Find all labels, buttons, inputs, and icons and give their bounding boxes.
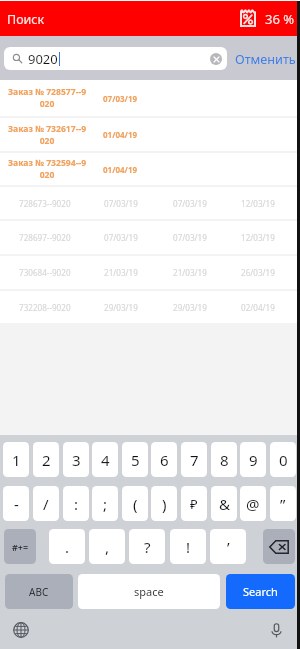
button[interactable]: - (3, 486, 29, 521)
staticText: - (14, 494, 19, 514)
button[interactable]: Заказ № 732594--9 020 (0, 153, 300, 185)
button[interactable]: ) (151, 486, 177, 521)
staticText: 7 (190, 450, 199, 470)
staticText: 728697--9020 (19, 232, 71, 243)
button[interactable]: ? (129, 529, 165, 564)
staticText: / (43, 494, 49, 514)
staticText: 9 (249, 450, 258, 470)
staticText: 26/03/19 (241, 267, 275, 278)
button[interactable]: . (49, 529, 85, 564)
staticText: 9020 (28, 50, 58, 68)
button[interactable]: 728697--9020 (0, 221, 300, 254)
staticText: @ (246, 494, 260, 514)
button[interactable]: @ (240, 486, 266, 521)
staticText: 07/03/19 (173, 198, 207, 209)
button[interactable]: ! (170, 529, 206, 564)
staticText: 02/04/19 (241, 302, 275, 313)
staticText: 1 (12, 450, 21, 470)
staticText: 4 (101, 450, 110, 470)
button[interactable]: / (33, 486, 59, 521)
staticText: 12/03/19 (241, 232, 275, 243)
button[interactable]: 728673--9020 (0, 187, 300, 219)
staticText: 01/04/19 (103, 164, 138, 175)
button[interactable]: : (63, 486, 89, 521)
staticText: 01/04/19 (103, 129, 138, 140)
staticText: ! (186, 537, 191, 557)
staticText: 29/03/19 (173, 302, 207, 313)
staticText: 728673--9020 (19, 198, 71, 209)
button[interactable]: Change keyboard (9, 618, 33, 642)
button[interactable]: 730684--9020 (0, 256, 300, 289)
button[interactable]: 2 (33, 442, 59, 477)
staticText: ( (133, 494, 138, 514)
staticText: Заказ № 732617--9 020 (3, 123, 91, 147)
button[interactable]: space (78, 574, 220, 609)
button[interactable]: #+= (4, 529, 36, 564)
staticText: ABC (29, 585, 49, 599)
staticText: 07/03/19 (104, 232, 138, 243)
button[interactable]: 3 (63, 442, 89, 477)
button[interactable]: 9 (240, 442, 266, 477)
staticText: : (74, 494, 79, 514)
button[interactable]: Backspace (263, 529, 295, 564)
staticText: ) (162, 494, 167, 514)
staticText: Search (243, 584, 278, 599)
button[interactable]: 9020 (4, 47, 227, 70)
button[interactable]: ₽ (181, 486, 207, 521)
staticText: 07/03/19 (104, 198, 138, 209)
staticText: ? (144, 537, 151, 557)
staticText: 732208--9020 (19, 302, 71, 313)
staticText: . (65, 537, 70, 557)
staticText: #+= (12, 541, 29, 553)
staticText: 8 (220, 450, 229, 470)
staticText: 12/03/19 (241, 198, 275, 209)
button[interactable]: ABC (5, 574, 73, 609)
button[interactable]: Search (226, 574, 295, 609)
staticText: 2 (42, 450, 51, 470)
button[interactable]: 1 (3, 442, 29, 477)
staticText: 0 (279, 450, 288, 470)
staticText: 07/03/19 (103, 93, 138, 104)
staticText: ” (280, 494, 286, 514)
staticText: ’ (227, 537, 230, 557)
button[interactable]: 0 (270, 442, 296, 477)
button[interactable]: 6 (151, 442, 177, 477)
staticText: 36 % (265, 10, 295, 28)
button[interactable]: Отменить (235, 36, 296, 80)
button[interactable]: 732208--9020 (0, 291, 300, 323)
staticText: Заказ № 732594--9 020 (3, 157, 91, 181)
button[interactable]: 8 (211, 442, 237, 477)
button[interactable]: 5 (122, 442, 148, 477)
staticText: 6 (160, 450, 169, 470)
staticText: 730684--9020 (19, 267, 71, 278)
button[interactable]: ( (122, 486, 148, 521)
button[interactable]: ’ (210, 529, 246, 564)
staticText: 07/03/19 (173, 232, 207, 243)
button[interactable]: & (211, 486, 237, 521)
button[interactable]: 7 (181, 442, 207, 477)
button[interactable]: Dictation (264, 618, 288, 642)
staticText: 29/03/19 (104, 302, 138, 313)
button[interactable]: ; (92, 486, 118, 521)
button[interactable]: Заказ № 732617--9 020 (0, 118, 300, 151)
staticText: Поиск (7, 11, 45, 28)
staticText: 21/03/19 (173, 267, 207, 278)
staticText: space (134, 584, 164, 599)
staticText: 5 (131, 450, 140, 470)
button[interactable]: 4 (92, 442, 118, 477)
button[interactable]: , (89, 529, 125, 564)
staticText: ₽ (190, 495, 198, 513)
staticText: ; (103, 494, 108, 514)
staticText: , (105, 537, 110, 557)
button[interactable]: Clear text (210, 53, 222, 65)
staticText: 21/03/19 (104, 267, 138, 278)
staticText: Отменить (235, 50, 296, 67)
staticText: 3 (72, 450, 81, 470)
button[interactable]: Заказ № 728577--9 020 (0, 80, 300, 116)
staticText: & (219, 494, 230, 514)
button[interactable]: ” (270, 486, 296, 521)
staticText: Заказ № 728577--9 020 (3, 86, 91, 110)
